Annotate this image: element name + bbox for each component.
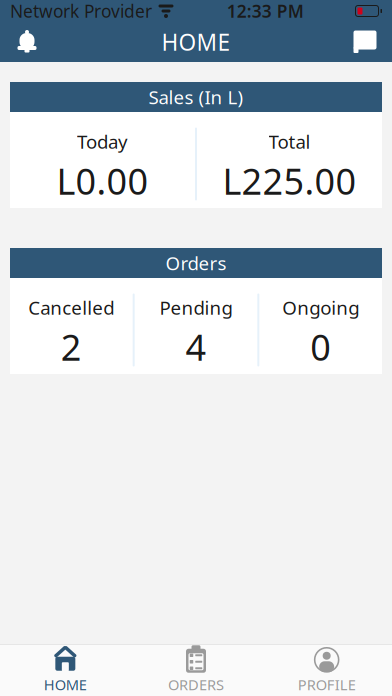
- staticText: L225.00: [222, 157, 356, 205]
- staticText: HOME: [161, 27, 230, 57]
- staticText: 12:33 PM: [227, 0, 304, 22]
- button[interactable]: ORDERS: [131, 646, 261, 695]
- staticText: Today: [77, 129, 128, 154]
- staticText: HOME: [44, 675, 87, 694]
- button[interactable]: Messages: [338, 22, 392, 62]
- staticText: 2: [61, 323, 82, 371]
- staticText: Network Provider: [10, 0, 152, 22]
- staticText: Cancelled: [28, 295, 114, 320]
- staticText: L0.00: [56, 157, 148, 205]
- button[interactable]: PROFILE: [261, 646, 392, 695]
- staticText: Ongoing: [282, 295, 359, 320]
- button[interactable]: HOME: [0, 646, 131, 695]
- staticText: ORDERS: [168, 675, 224, 694]
- staticText: Sales (In L): [148, 85, 243, 109]
- staticText: PROFILE: [298, 675, 356, 694]
- staticText: Total: [268, 129, 310, 154]
- staticText: Pending: [159, 295, 232, 320]
- button[interactable]: Notifications: [0, 22, 54, 62]
- staticText: 0: [310, 323, 331, 371]
- staticText: 4: [185, 323, 206, 371]
- staticText: Orders: [165, 251, 226, 275]
